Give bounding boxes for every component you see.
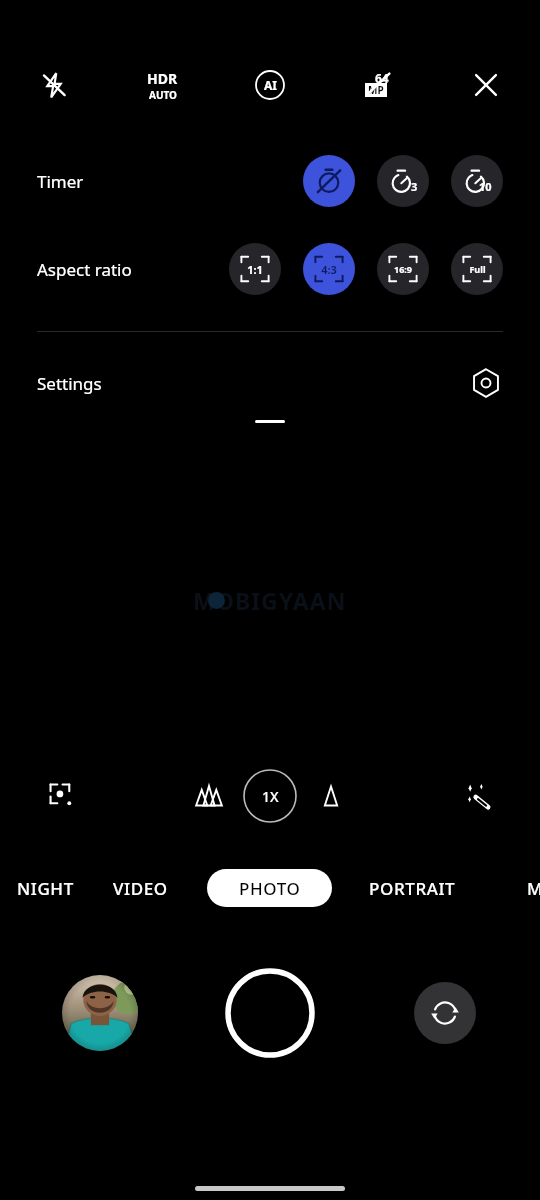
button[interactable]: Timer 3 seconds — [377, 155, 429, 207]
button[interactable]: Take photo — [223, 966, 317, 1060]
staticText: Full — [469, 263, 486, 275]
button[interactable]: Filters — [454, 772, 502, 820]
button[interactable]: Gallery — [62, 975, 138, 1051]
button[interactable]: PHOTO — [207, 869, 332, 907]
staticText: AI — [264, 77, 277, 93]
staticText: MOBIGYAAN — [193, 585, 347, 616]
button[interactable]: Settings — [0, 358, 540, 408]
button[interactable]: Wide 1x — [309, 774, 353, 818]
button[interactable]: 64 MP off — [324, 60, 432, 110]
staticText: Aspect ratio — [37, 258, 132, 281]
button[interactable]: Timer off — [303, 155, 355, 207]
staticText: Timer — [37, 170, 84, 193]
staticText: AUTO — [149, 88, 177, 102]
button[interactable]: Switch camera — [414, 982, 476, 1044]
button[interactable]: HDR auto — [108, 60, 216, 110]
button[interactable]: Close — [432, 60, 540, 110]
staticText: HDR — [147, 69, 178, 88]
staticText: VIDEO — [113, 877, 168, 900]
staticText: Settings — [37, 372, 102, 395]
staticText: 3 — [411, 179, 418, 194]
staticText: 1:1 — [247, 262, 263, 277]
button[interactable]: MO — [527, 862, 540, 914]
button[interactable]: 4 to 3 — [303, 243, 355, 295]
staticText: MP — [368, 83, 384, 97]
button[interactable]: Google Lens — [38, 772, 86, 820]
button[interactable]: AI scene detection — [216, 60, 324, 110]
button[interactable]: PORTRAIT — [369, 862, 456, 914]
button[interactable]: 1 to 1 — [229, 243, 281, 295]
button[interactable]: Flash off — [0, 60, 108, 110]
staticText: 10 — [479, 179, 492, 194]
button[interactable]: Full — [451, 243, 503, 295]
button[interactable]: Ultra wide 0.6x — [187, 774, 231, 818]
staticText: 64 — [375, 70, 389, 86]
staticText: 16:9 — [394, 263, 412, 275]
staticText: MO — [527, 877, 540, 900]
staticText: PORTRAIT — [369, 877, 456, 900]
button[interactable]: NIGHT — [17, 862, 74, 914]
button[interactable]: Timer 10 seconds — [451, 155, 503, 207]
staticText: NIGHT — [17, 877, 74, 900]
staticText: 4:3 — [321, 262, 337, 277]
button[interactable]: VIDEO — [113, 862, 168, 914]
button[interactable]: 1X — [243, 769, 297, 823]
button[interactable]: 16 to 9 — [377, 243, 429, 295]
staticText: 1X — [262, 787, 279, 806]
staticText: PHOTO — [239, 877, 301, 900]
